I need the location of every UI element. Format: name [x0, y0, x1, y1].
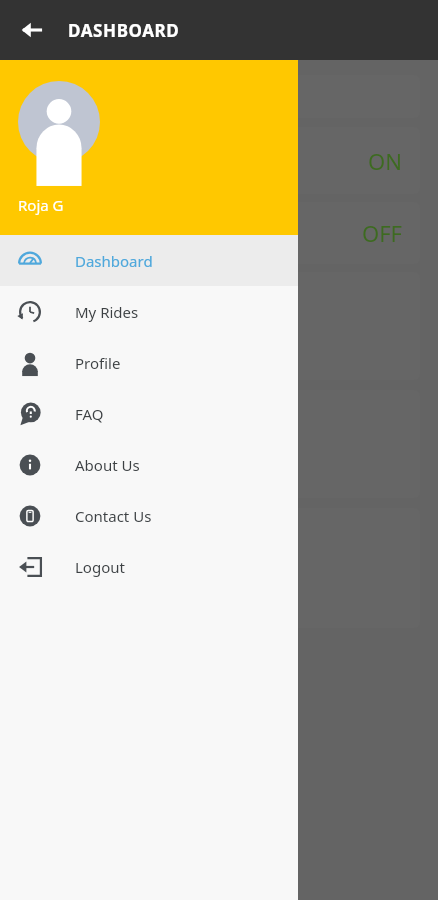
- button[interactable]: OFF: [10, 202, 420, 264]
- staticText: Logout: [75, 557, 125, 577]
- staticText: Roja G: [18, 195, 64, 215]
- button[interactable]: ON: [10, 127, 420, 194]
- staticText: Contact Us: [75, 506, 152, 526]
- staticText: About Us: [75, 455, 140, 475]
- button[interactable]: [10, 272, 420, 380]
- staticText: Profile: [75, 353, 121, 373]
- button[interactable]: About Us: [0, 439, 298, 490]
- staticText: FAQ: [75, 404, 104, 424]
- button[interactable]: Logout: [0, 541, 298, 592]
- staticText: Dashboard: [75, 251, 153, 271]
- button[interactable]: FAQ: [0, 388, 298, 439]
- staticText: OFF: [361, 218, 402, 248]
- staticText: My Rides: [75, 302, 139, 322]
- button[interactable]: [10, 508, 420, 628]
- button[interactable]: [10, 390, 420, 498]
- button[interactable]: Dashboard: [0, 235, 298, 286]
- button[interactable]: One Year: [10, 75, 420, 118]
- button[interactable]: Profile: [0, 337, 298, 388]
- button[interactable]: My Rides: [0, 286, 298, 337]
- button[interactable]: Back: [10, 8, 54, 52]
- button[interactable]: Contact Us: [0, 490, 298, 541]
- staticText: ON: [368, 146, 402, 176]
- staticText: DASHBOARD: [68, 19, 180, 42]
